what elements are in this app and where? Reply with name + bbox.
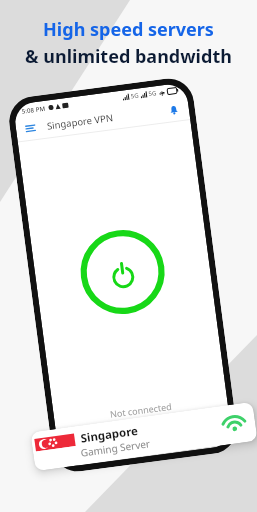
staticText: 5:08 PM: [21, 104, 46, 115]
staticText: Singapore VPN: [46, 111, 114, 133]
staticText: Gaming Server: [80, 436, 151, 460]
button[interactable]: Open navigation menu: [21, 119, 40, 138]
button[interactable]: Notifications: [164, 100, 184, 120]
staticText: Not connected: [54, 392, 228, 427]
button[interactable]: Connect: [75, 225, 170, 319]
other: Signal strength: [220, 413, 248, 433]
staticText: High speed servers: [43, 17, 214, 42]
staticText: 5G: [148, 89, 157, 98]
staticText: & unlimited bandwidth: [25, 44, 232, 69]
button[interactable]: Singapore: [30, 402, 257, 471]
staticText: Singapore: [80, 423, 139, 447]
staticText: 5G: [130, 91, 139, 100]
